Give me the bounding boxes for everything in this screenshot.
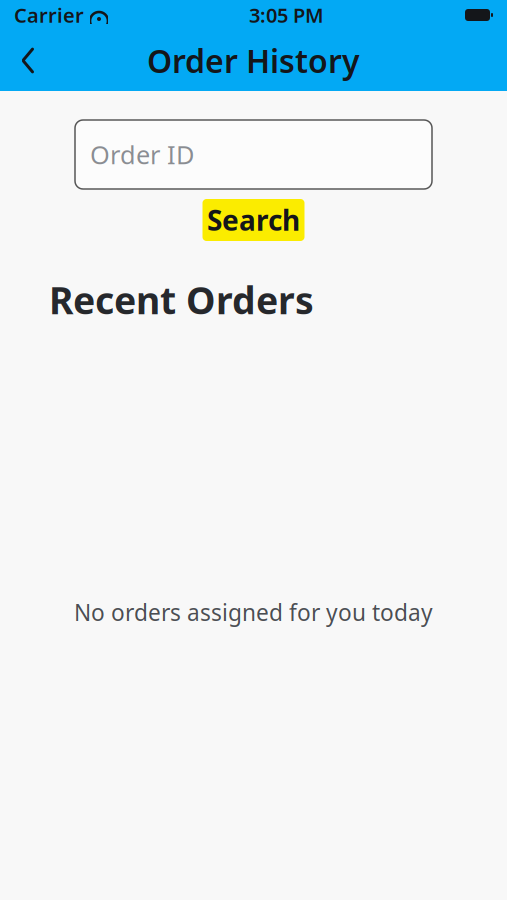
staticText: No orders assigned for you today bbox=[74, 597, 433, 627]
staticText: Carrier bbox=[14, 2, 84, 28]
button[interactable]: Search bbox=[202, 199, 304, 241]
staticText: Search bbox=[207, 201, 300, 239]
staticText: Order History bbox=[147, 39, 360, 82]
button[interactable]: Order ID bbox=[75, 120, 432, 189]
staticText: Recent Orders bbox=[49, 275, 314, 325]
staticText: Order ID bbox=[90, 138, 194, 171]
staticText: 3:05 PM bbox=[249, 2, 324, 28]
button[interactable]: Back bbox=[0, 32, 56, 88]
